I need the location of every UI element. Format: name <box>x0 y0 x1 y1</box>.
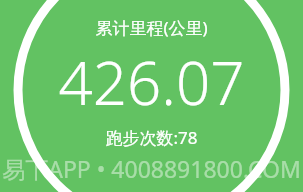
staticText: 累计里程(公里) <box>0 16 303 39</box>
staticText: 跑步次数:78 <box>0 126 303 149</box>
staticText: 426.07 <box>0 41 303 123</box>
staticText: 易下APP • 4008891800.COM <box>0 153 303 184</box>
